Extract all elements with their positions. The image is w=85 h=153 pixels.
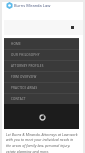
button[interactable]: HOME (4, 38, 79, 49)
staticText: OUR PHILOSOPHY (11, 53, 40, 57)
staticText: FIRM OVERVIEW (11, 75, 37, 79)
staticText: ATTORNEY PROFILES (11, 64, 44, 68)
button[interactable]: OUR PHILOSOPHY (4, 49, 79, 60)
staticText: Let Burns & Miranda, Attorneys at Law wo… (6, 132, 78, 153)
button[interactable]: ATTORNEY PROFILES (4, 60, 79, 71)
staticText: HOME (11, 42, 21, 46)
button[interactable]: PRACTICE AREAS (4, 82, 79, 93)
staticText: CONTACT (11, 97, 26, 101)
button[interactable]: FIRM OVERVIEW (4, 71, 79, 82)
staticText: Burns Miranda Law (14, 3, 51, 8)
staticText: PRACTICE AREAS (11, 86, 38, 90)
button[interactable]: CONTACT (4, 93, 79, 104)
